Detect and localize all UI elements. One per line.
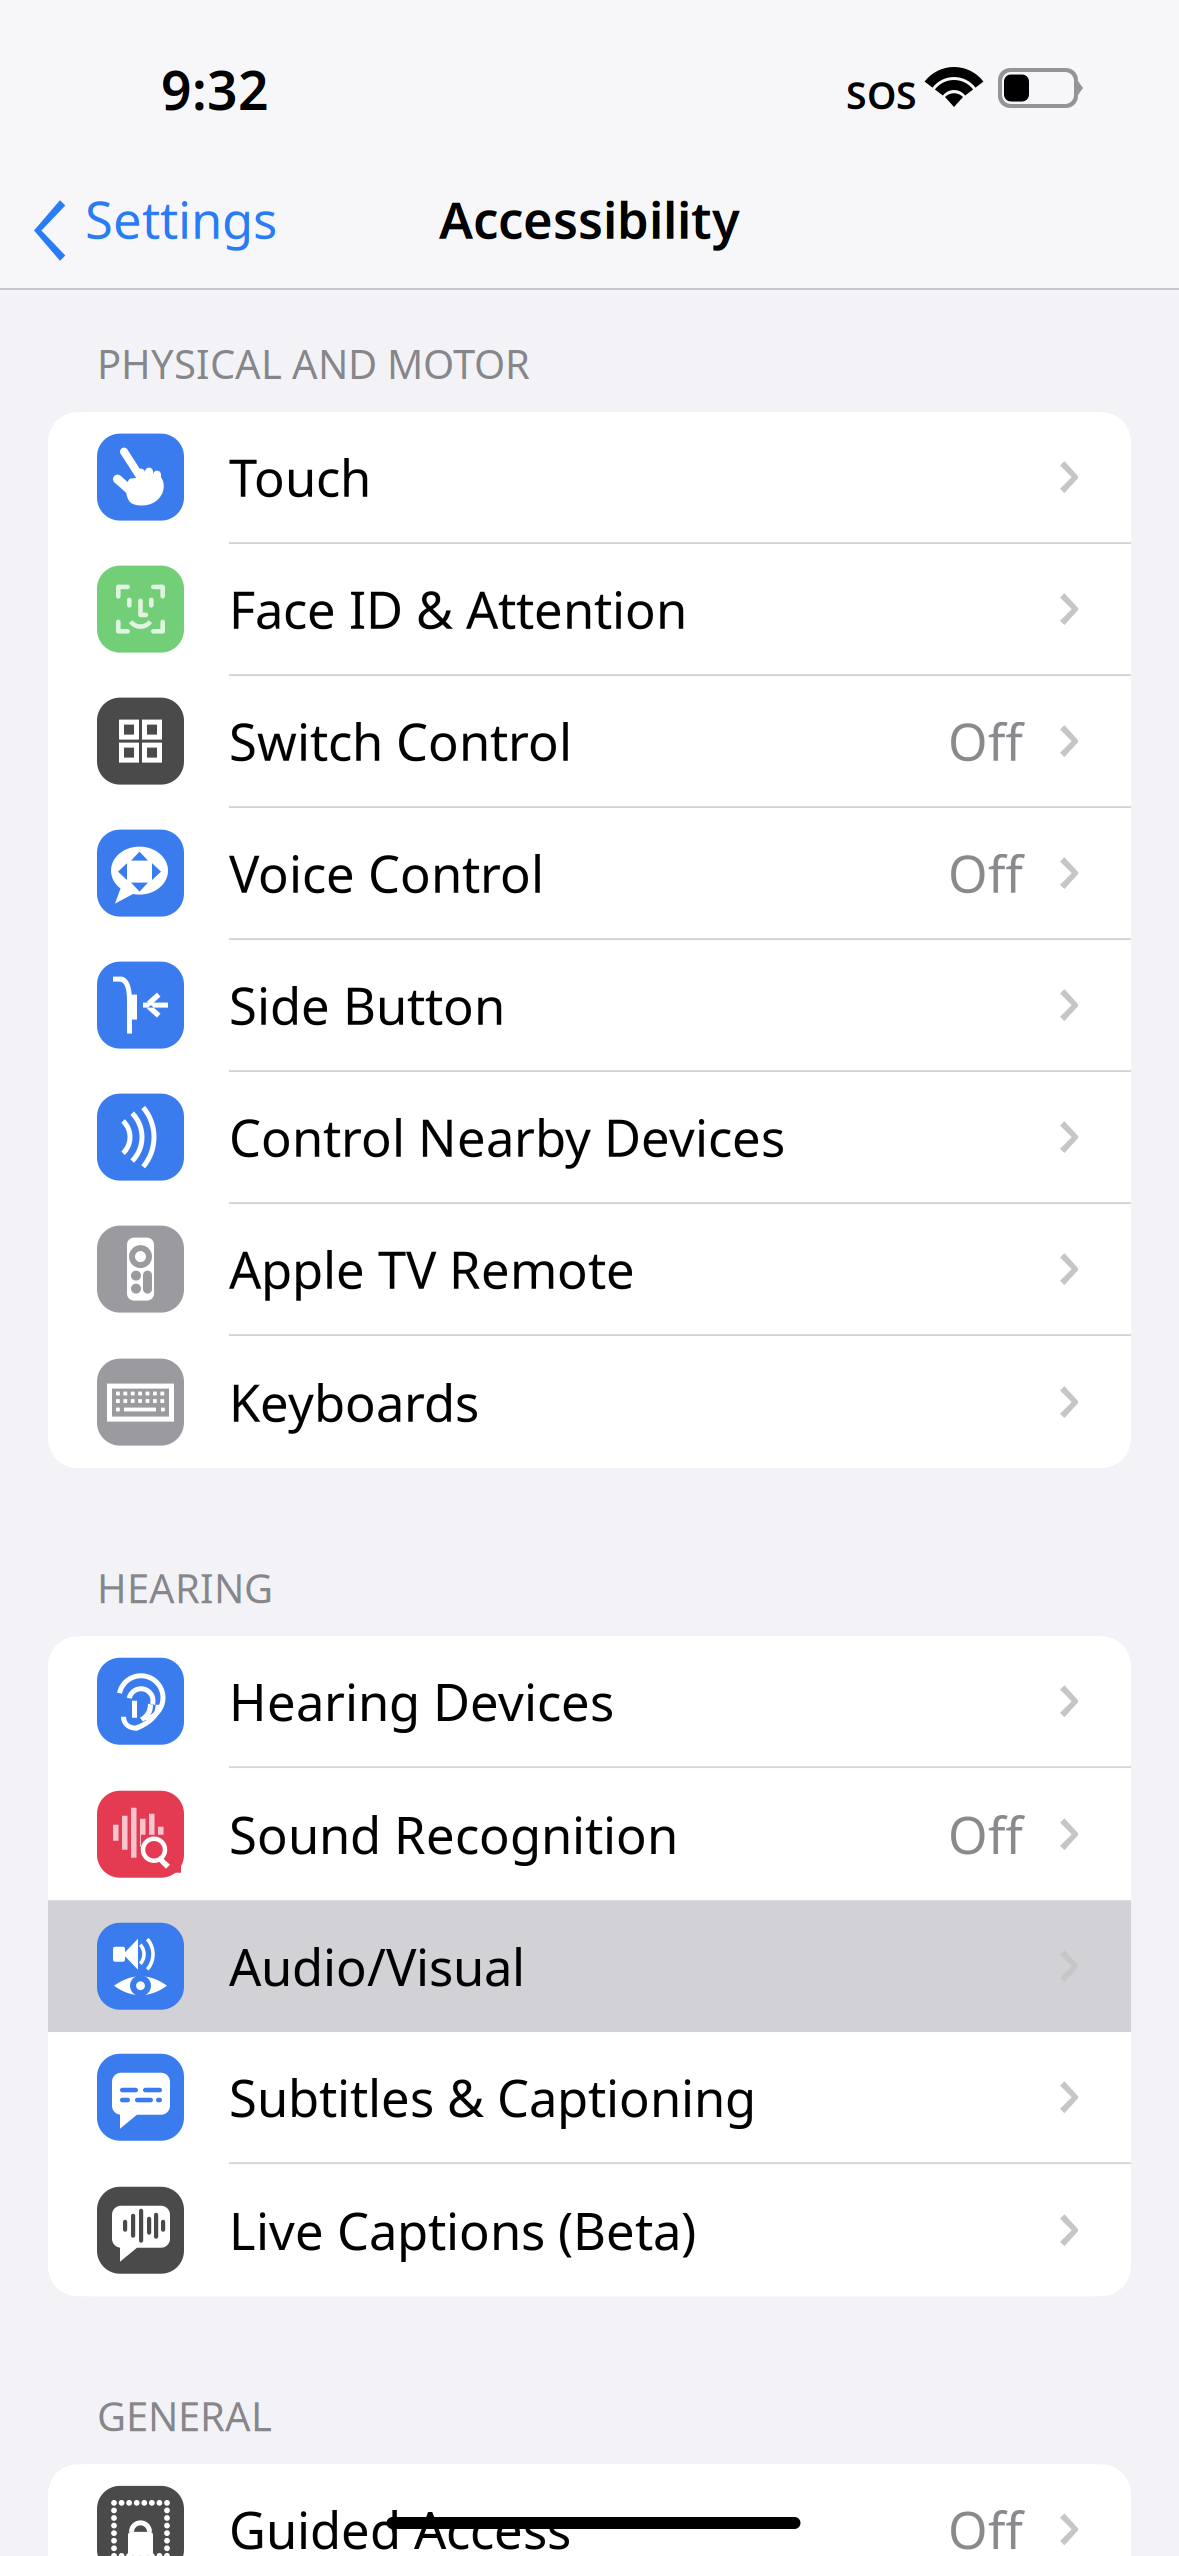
button[interactable]: Face ID & Attention [48,544,1131,676]
button[interactable]: Voice Control [48,808,1131,940]
staticText: Hearing Devices [229,1668,614,1735]
button[interactable]: Side Button [48,940,1131,1072]
staticText: Voice Control [229,839,544,907]
button[interactable]: Touch [48,412,1131,544]
staticText: SOS [846,70,917,120]
button[interactable]: Keyboards [48,1336,1131,1468]
staticText: Accessibility [439,185,740,253]
button[interactable]: Control Nearby Devices [48,1072,1131,1204]
button[interactable]: Switch Control [48,676,1131,808]
button[interactable]: Apple TV Remote [48,1204,1131,1336]
button[interactable]: Hearing Devices [48,1636,1131,1768]
staticText: Off [948,1801,1023,1868]
staticText: Touch [229,443,371,511]
staticText: Side Button [229,971,505,1039]
staticText: Settings [85,185,277,253]
staticText: Off [948,839,1023,907]
staticText: Keyboards [229,1368,479,1436]
staticText: Off [948,2496,1023,2556]
staticText: Switch Control [229,707,572,775]
staticText: Guided Access [229,2496,571,2556]
staticText: PHYSICAL AND MOTOR [97,337,530,390]
staticText: HEARING [97,1561,273,1614]
button[interactable]: Subtitles & Captioning [48,2032,1131,2164]
staticText: Face ID & Attention [229,575,687,643]
button[interactable]: Sound Recognition [48,1768,1131,1900]
button[interactable]: Audio/Visual [48,1900,1131,2032]
staticText: 9:32 [161,54,269,125]
staticText: Audio/Visual [229,1933,525,2000]
button[interactable]: Live Captions (Beta) [48,2164,1131,2296]
staticText: Off [948,707,1023,775]
staticText: Sound Recognition [229,1801,678,1868]
staticText: Subtitles & Captioning [229,2064,756,2131]
button[interactable]: Back to Settings [0,150,301,288]
staticText: GENERAL [97,2389,272,2442]
staticText: Live Captions (Beta) [229,2197,696,2264]
button[interactable]: Guided Access [48,2464,1131,2556]
staticText: Control Nearby Devices [229,1103,785,1171]
staticText: Apple TV Remote [229,1235,635,1303]
